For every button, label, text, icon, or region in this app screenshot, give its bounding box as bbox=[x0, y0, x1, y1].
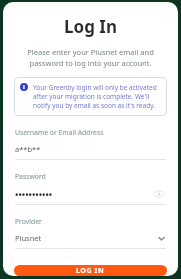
staticText: ••••••••••• bbox=[15, 188, 152, 200]
staticText: Username or Email Address bbox=[15, 128, 104, 137]
staticText: LOG IN bbox=[76, 266, 105, 276]
staticText: Password bbox=[15, 172, 46, 181]
button[interactable]: Show password bbox=[152, 187, 166, 201]
staticText: a**b** bbox=[15, 144, 41, 154]
staticText: Plusnet bbox=[15, 233, 156, 243]
staticText: Provider bbox=[15, 217, 42, 226]
staticText: Log In bbox=[64, 15, 117, 38]
button[interactable]: a**b** bbox=[15, 144, 166, 154]
button[interactable]: LOG IN bbox=[14, 265, 167, 276]
staticText: Your Greenby login will only be activate… bbox=[33, 83, 161, 110]
button[interactable]: ••••••••••• bbox=[15, 187, 166, 201]
staticText: Please enter your Plusnet email and pass… bbox=[15, 47, 166, 68]
button[interactable]: Plusnet bbox=[15, 233, 166, 243]
staticText: i bbox=[23, 83, 25, 91]
